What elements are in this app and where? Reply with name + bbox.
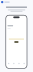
button[interactable]: Tab	[6, 61, 11, 65]
button[interactable]: Tab	[16, 61, 22, 65]
button[interactable]: Tab	[21, 61, 27, 65]
button[interactable]: Tab	[11, 61, 16, 65]
button[interactable]: Home	[1, 1, 3, 3]
button[interactable]: Products	[4, 1, 10, 3]
